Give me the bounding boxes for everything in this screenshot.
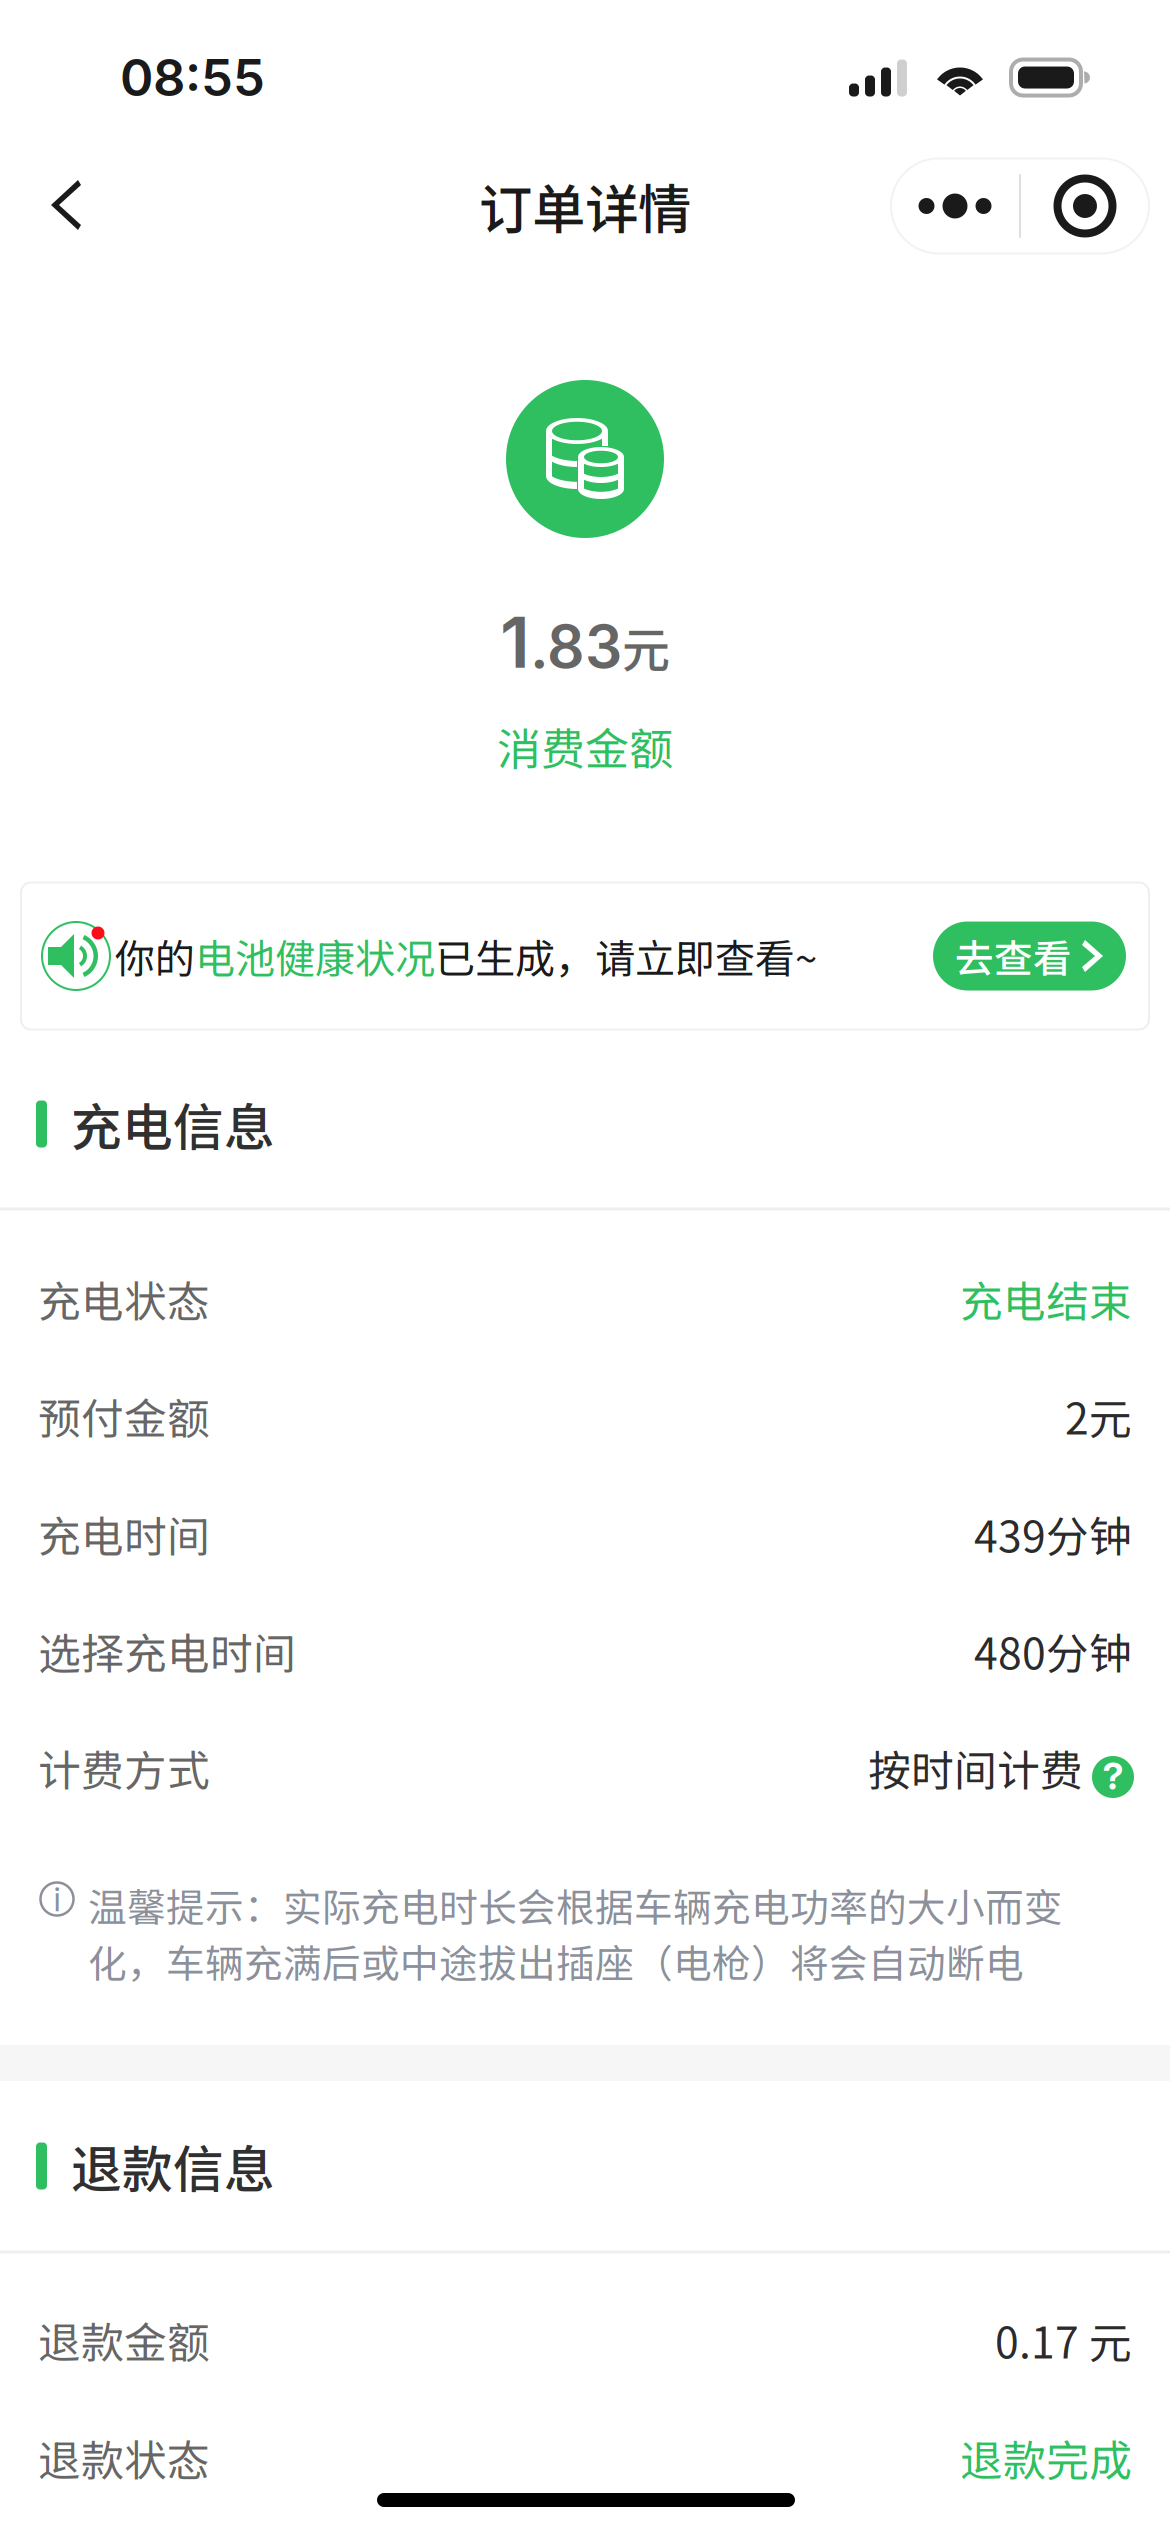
button[interactable]: 计费方式说明 <box>1083 1738 1143 1798</box>
staticText: 充电时间 <box>38 1503 210 1565</box>
staticText: 1 <box>500 599 530 685</box>
staticText: .83 <box>530 611 622 682</box>
staticText: 消费金额 <box>497 714 673 778</box>
staticText: 2元 <box>1065 1385 1132 1447</box>
staticText: 退款完成 <box>960 2427 1132 2489</box>
staticText: 选择充电时间 <box>38 1620 296 1682</box>
staticText: 退款信息 <box>71 2129 275 2203</box>
button[interactable]: 更多 <box>891 158 1019 253</box>
staticText: 温馨提示：实际充电时长会根据车辆充电功率的大小而变化，车辆充满后或中途拔出插座（… <box>88 1877 1063 1989</box>
button[interactable]: 返回 <box>26 154 110 258</box>
staticText: 充电状态 <box>38 1268 210 1330</box>
button[interactable]: 去查看 <box>933 921 1126 990</box>
staticText: 退款状态 <box>38 2427 210 2489</box>
button[interactable]: 关闭 <box>1021 158 1149 253</box>
staticText: 元 <box>622 612 670 681</box>
staticText: 预付金额 <box>38 1385 210 1447</box>
staticText: 电池健康状况 <box>195 927 435 985</box>
staticText: 充电信息 <box>71 1087 275 1161</box>
staticText: 计费方式 <box>38 1737 210 1799</box>
staticText: i <box>53 1879 60 1919</box>
staticText: 0.17 元 <box>995 2309 1132 2371</box>
staticText: 你的 <box>115 927 195 985</box>
staticText: 480分钟 <box>974 1620 1132 1682</box>
staticText: 去查看 <box>955 928 1072 984</box>
staticText: 按时间计费 <box>868 1737 1083 1799</box>
staticText: 已生成，请立即查看~ <box>435 927 817 985</box>
staticText: 439分钟 <box>974 1503 1132 1565</box>
staticText: 退款金额 <box>38 2309 210 2371</box>
staticText: ? <box>1102 1753 1123 1799</box>
staticText: 08:55 <box>120 47 265 108</box>
staticText: 订单详情 <box>479 167 691 245</box>
staticText: 充电结束 <box>960 1268 1132 1330</box>
